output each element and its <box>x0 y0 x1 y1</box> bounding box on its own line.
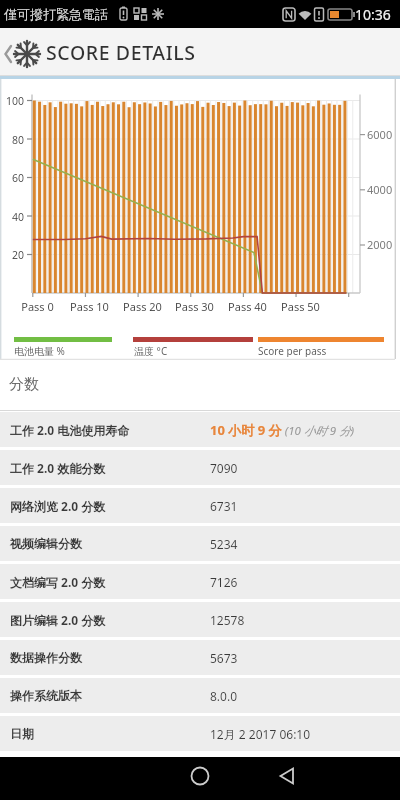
staticText: Score per pass <box>258 344 327 357</box>
button[interactable] <box>0 28 44 76</box>
button[interactable] <box>0 602 400 637</box>
button[interactable] <box>0 678 400 713</box>
button[interactable] <box>0 488 400 523</box>
staticText: 6731 <box>210 498 238 514</box>
staticText: Pass 20 <box>123 299 162 313</box>
staticText: 工作 2.0 效能分数 <box>10 460 106 476</box>
staticText: 日期 <box>10 726 34 741</box>
staticText: 数据操作分数 <box>10 650 82 665</box>
staticText: Pass 10 <box>70 299 109 313</box>
staticText: 4000 <box>367 182 393 197</box>
staticText: 7126 <box>210 574 238 590</box>
staticText: 8.0.0 <box>210 688 238 704</box>
staticText: 2000 <box>367 237 393 252</box>
staticText: 7090 <box>210 460 238 476</box>
staticText: 80 <box>12 133 25 147</box>
staticText: 20 <box>12 248 25 262</box>
staticText: 僅可撥打緊急電話 <box>4 6 108 22</box>
button[interactable] <box>265 757 309 800</box>
button[interactable] <box>0 412 400 447</box>
staticText: 网络浏览 2.0 分数 <box>10 498 106 514</box>
staticText: Pass 40 <box>228 299 267 313</box>
button[interactable] <box>0 564 400 599</box>
staticText: 100 <box>6 94 25 108</box>
button[interactable] <box>0 716 400 751</box>
button[interactable] <box>0 526 400 561</box>
staticText: 12月 2 2017 06:10 <box>210 726 311 742</box>
staticText: Pass 50 <box>281 299 320 313</box>
staticText: 6000 <box>367 127 393 142</box>
staticText: 视频编辑分数 <box>10 536 82 551</box>
staticText: Pass 0 <box>21 299 54 313</box>
staticText: 电池电量 % <box>14 344 65 357</box>
staticText: 60 <box>12 171 25 185</box>
staticText: 12578 <box>210 612 245 628</box>
staticText: 10 小时 9 分 (10 小时 9 分) <box>210 421 354 439</box>
button[interactable] <box>0 640 400 675</box>
staticText: 5234 <box>210 536 238 552</box>
staticText: SCORE DETAILS <box>46 39 196 66</box>
button[interactable] <box>0 450 400 485</box>
staticText: 工作 2.0 电池使用寿命 <box>10 422 130 438</box>
staticText: Pass 30 <box>175 299 214 313</box>
staticText: 操作系统版本 <box>10 688 82 703</box>
staticText: 文档编写 2.0 分数 <box>10 574 106 590</box>
button[interactable] <box>178 757 222 800</box>
staticText: 5673 <box>210 650 238 666</box>
staticText: 分数 <box>9 375 39 394</box>
staticText: 图片编辑 2.0 分数 <box>10 612 106 628</box>
staticText: 10:36 <box>355 5 391 24</box>
staticText: 温度 °C <box>134 344 168 357</box>
staticText: 40 <box>12 210 25 224</box>
